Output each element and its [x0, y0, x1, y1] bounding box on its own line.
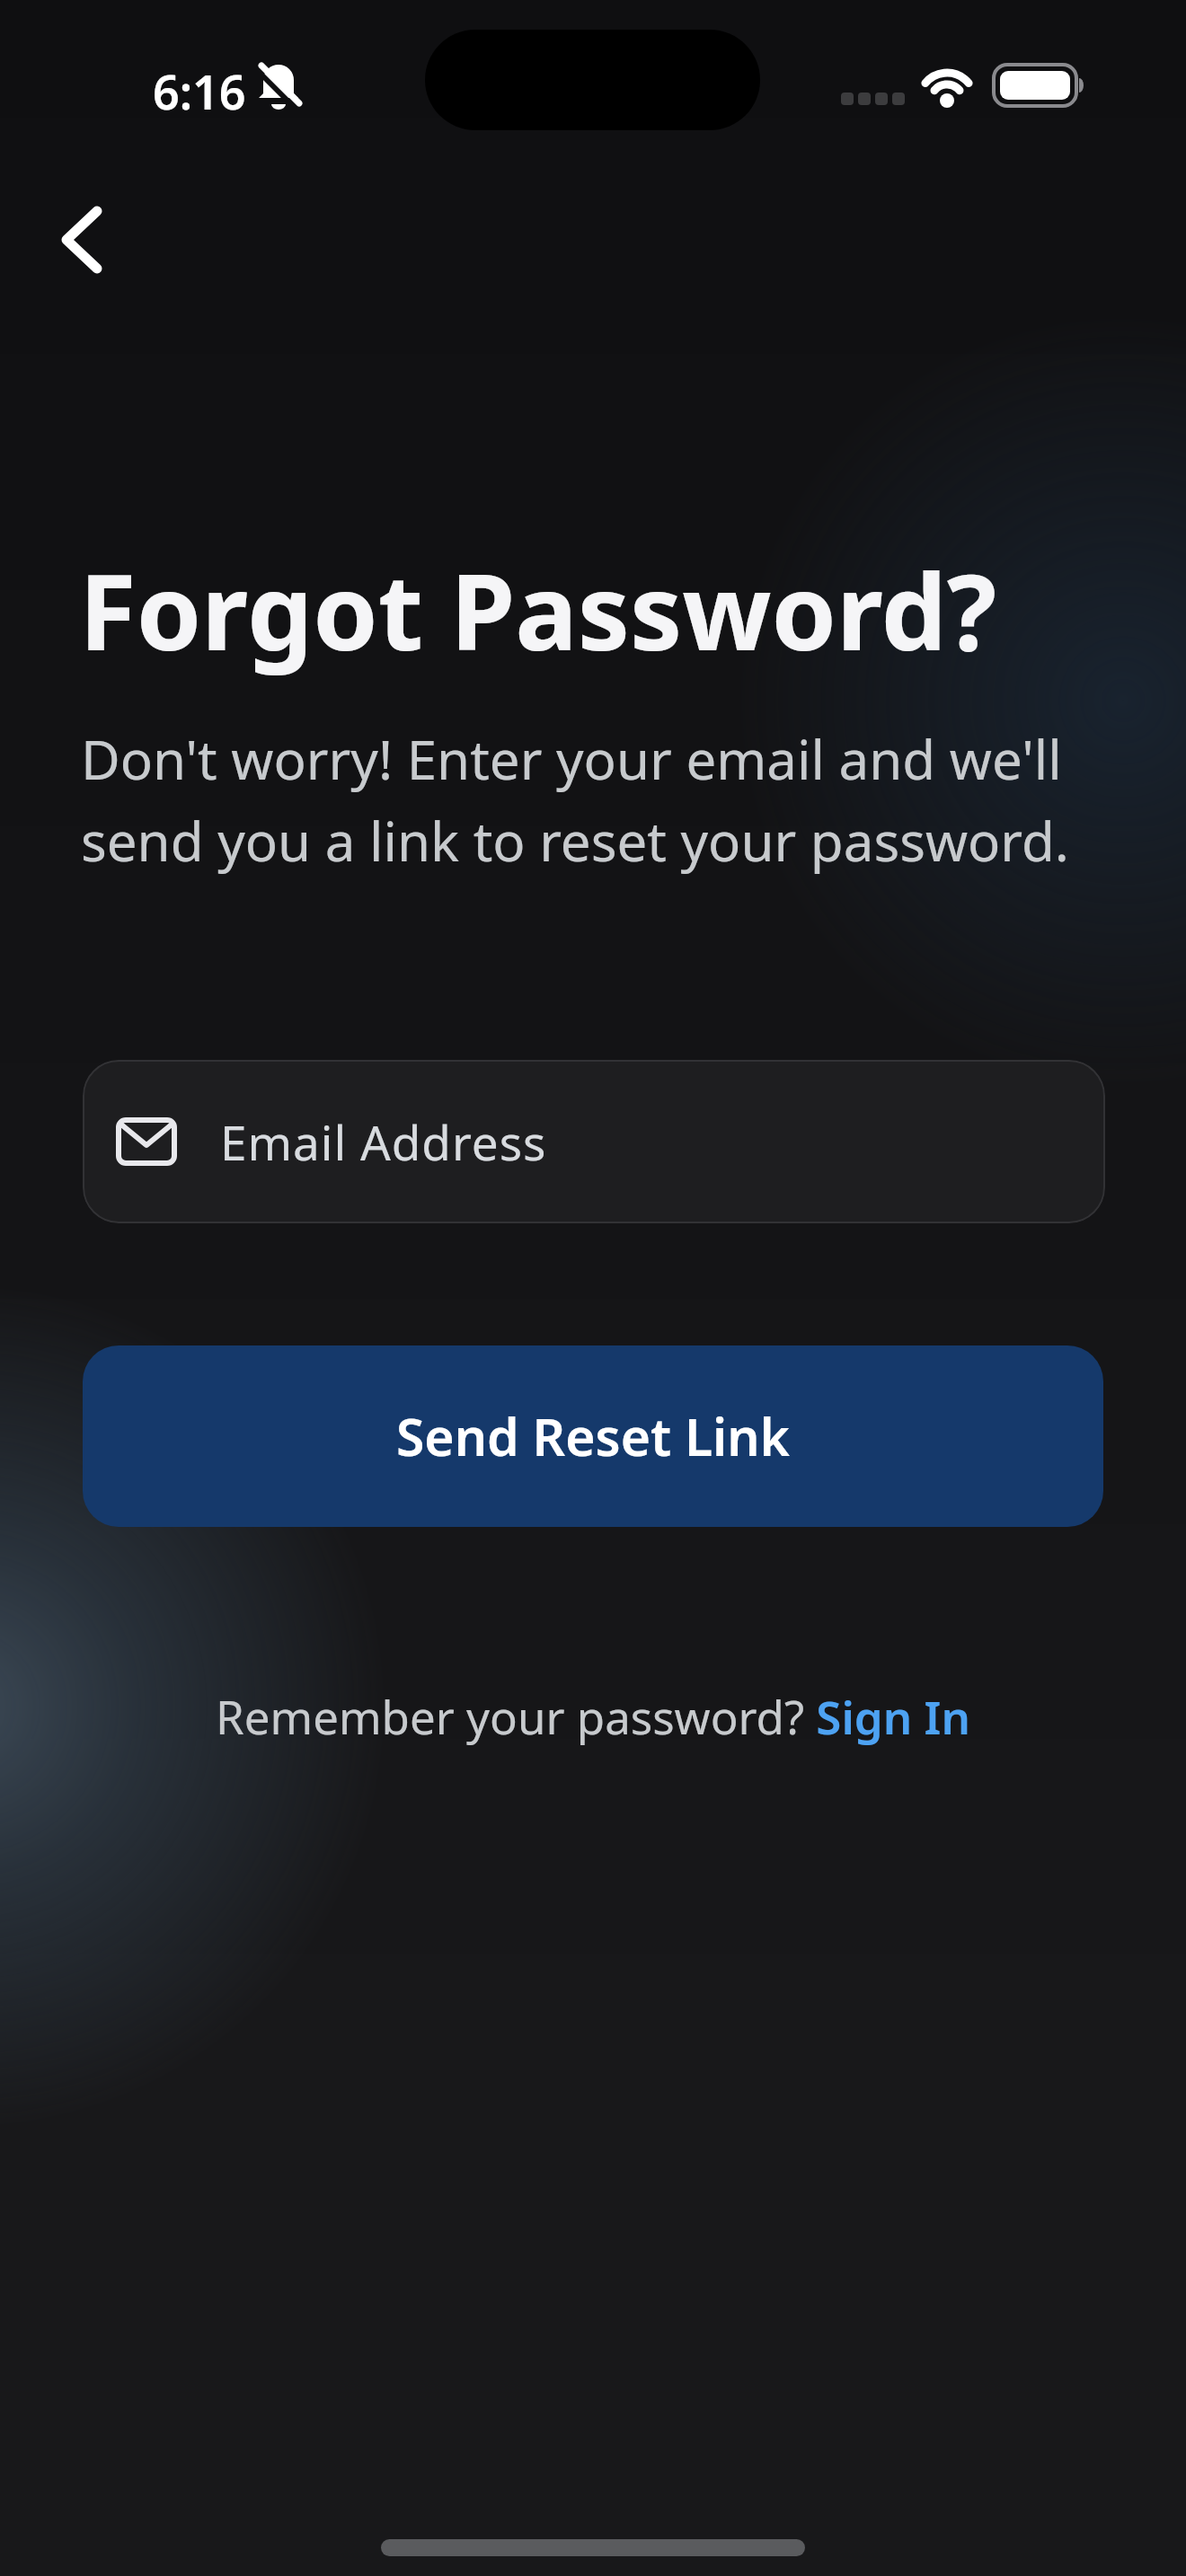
staticText: Remember your password? Sign In — [216, 1685, 970, 1747]
staticText: Forgot Password? — [79, 539, 997, 681]
staticText: 6:16 — [153, 59, 246, 123]
staticText: Don't worry! Enter your email and we'll … — [81, 722, 1069, 877]
button[interactable] — [36, 190, 126, 289]
staticText: Email Address — [220, 1109, 547, 1174]
button[interactable]: Email Address — [83, 1060, 1105, 1223]
button[interactable]: Send Reset Link — [83, 1345, 1103, 1527]
button[interactable]: Remember your password? Sign In — [216, 1685, 970, 1747]
staticText: Send Reset Link — [396, 1401, 791, 1471]
